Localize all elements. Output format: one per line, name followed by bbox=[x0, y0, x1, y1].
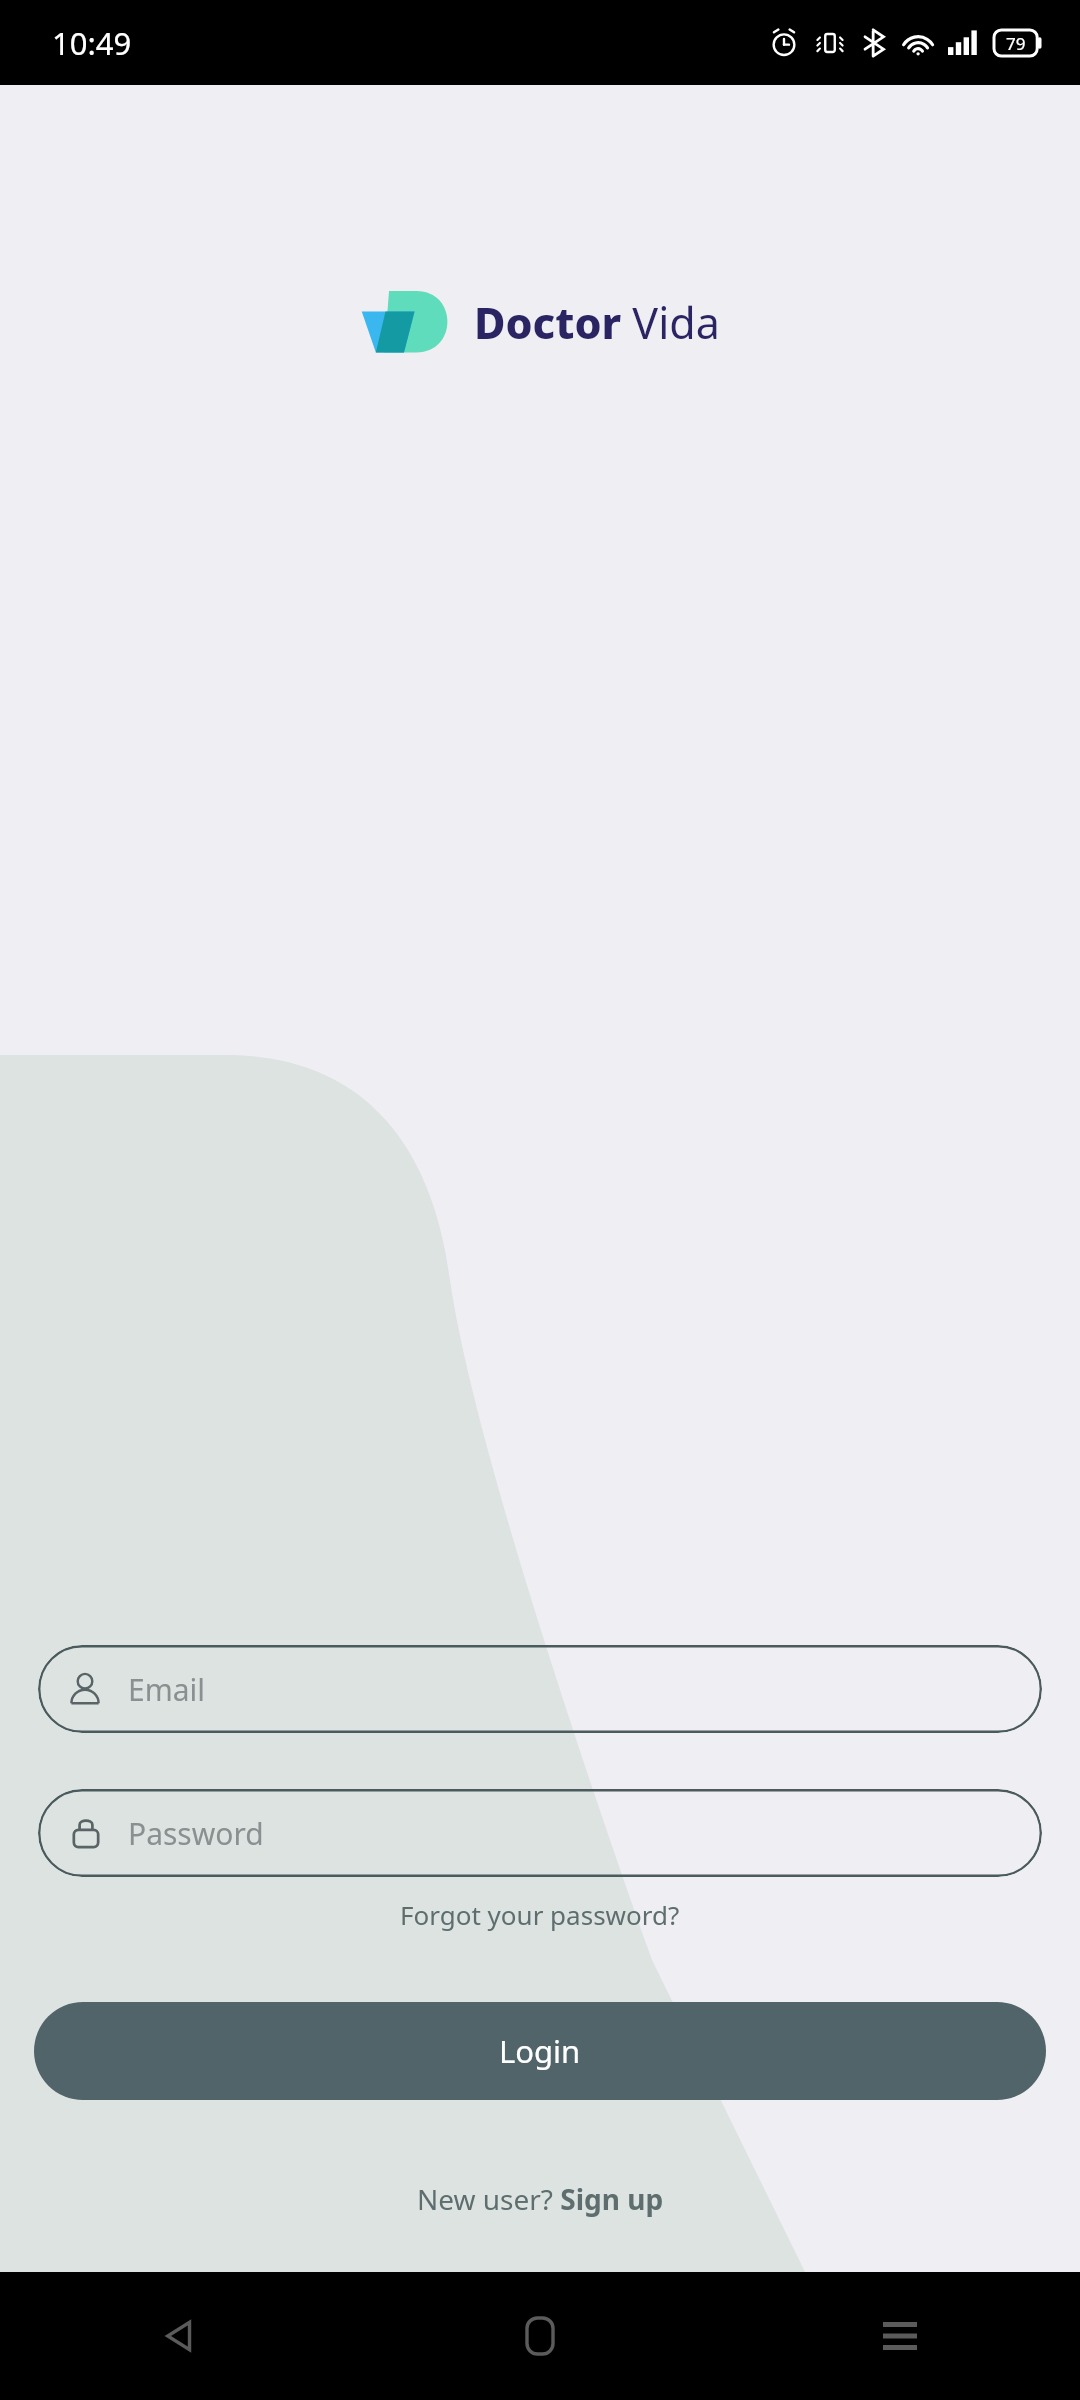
staticText: 10:49 bbox=[52, 22, 132, 64]
button[interactable]: Home bbox=[360, 2272, 720, 2400]
staticText: Password bbox=[128, 1813, 264, 1854]
button[interactable]: Menu bbox=[720, 2272, 1080, 2400]
button[interactable]: Back bbox=[0, 2272, 360, 2400]
staticText: Doctor Vida bbox=[474, 293, 720, 352]
button[interactable]: Email bbox=[38, 1645, 1042, 1733]
staticText: Email bbox=[128, 1669, 206, 1710]
button[interactable]: New user? Sign up bbox=[409, 2172, 672, 2226]
staticText: Forgot your password? bbox=[400, 1897, 680, 1932]
button[interactable]: Password bbox=[38, 1789, 1042, 1877]
button[interactable]: Forgot your password? bbox=[390, 1889, 690, 1940]
staticText: 79 bbox=[1006, 32, 1026, 55]
staticText: Login bbox=[499, 2030, 581, 2072]
button[interactable]: Login bbox=[34, 2002, 1046, 2100]
staticText: New user? Sign up bbox=[417, 2180, 664, 2218]
